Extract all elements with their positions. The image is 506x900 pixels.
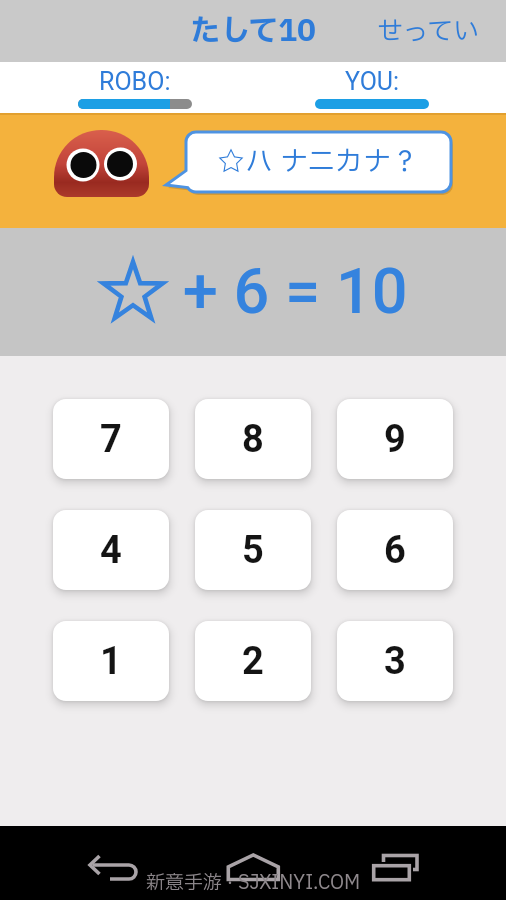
button[interactable]: せってい — [351, 0, 506, 62]
button[interactable]: 3 — [337, 621, 453, 701]
staticText: + 6 = 10 — [167, 255, 408, 329]
staticText: 1 — [100, 639, 122, 684]
staticText: 6 — [384, 528, 406, 573]
staticText: 新意手游 · SJXINYI.COM — [146, 869, 361, 897]
button[interactable]: 4 — [53, 510, 169, 590]
staticText: ☆ハ ナニカナ？ — [217, 141, 420, 183]
staticText: たして10 — [190, 9, 316, 54]
button[interactable]: 9 — [337, 399, 453, 479]
button[interactable]: 2 — [195, 621, 311, 701]
button[interactable] — [337, 826, 506, 900]
staticText: 7 — [100, 417, 122, 462]
button[interactable]: 1 — [53, 621, 169, 701]
button[interactable]: 6 — [337, 510, 453, 590]
button[interactable] — [0, 826, 168, 900]
staticText: 5 — [242, 528, 264, 573]
button[interactable]: 7 — [53, 399, 169, 479]
staticText: せってい — [377, 12, 480, 51]
staticText: 2 — [242, 639, 264, 684]
button[interactable]: ☆ハ ナニカナ？ — [186, 132, 451, 192]
staticText: ROBO: — [99, 67, 171, 96]
staticText: 8 — [242, 417, 264, 462]
button[interactable]: 5 — [195, 510, 311, 590]
button[interactable]: 8 — [195, 399, 311, 479]
staticText: YOU: — [345, 67, 400, 96]
staticText: 4 — [100, 528, 122, 573]
staticText: 9 — [384, 417, 406, 462]
staticText: 3 — [384, 639, 406, 684]
button[interactable] — [168, 826, 337, 900]
